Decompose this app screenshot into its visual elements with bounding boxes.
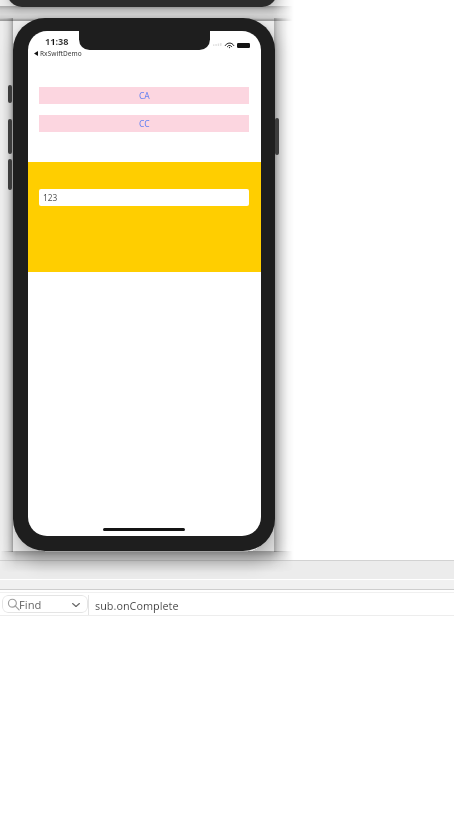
button[interactable]: CA <box>39 87 249 104</box>
staticText: Find <box>19 597 42 612</box>
button[interactable]: Search <box>2 595 88 613</box>
button[interactable]: CC <box>39 115 249 132</box>
button[interactable]: 123 <box>39 189 249 206</box>
other: Open dropdown <box>72 603 80 607</box>
staticText: RxSwiftDemo <box>40 49 82 58</box>
other: Search <box>8 599 19 610</box>
staticText: sub.onComplete <box>95 598 179 613</box>
staticText: 11:38 <box>45 35 69 48</box>
staticText: CA <box>139 90 150 102</box>
staticText: 123 <box>43 192 58 203</box>
staticText: CC <box>139 118 150 130</box>
